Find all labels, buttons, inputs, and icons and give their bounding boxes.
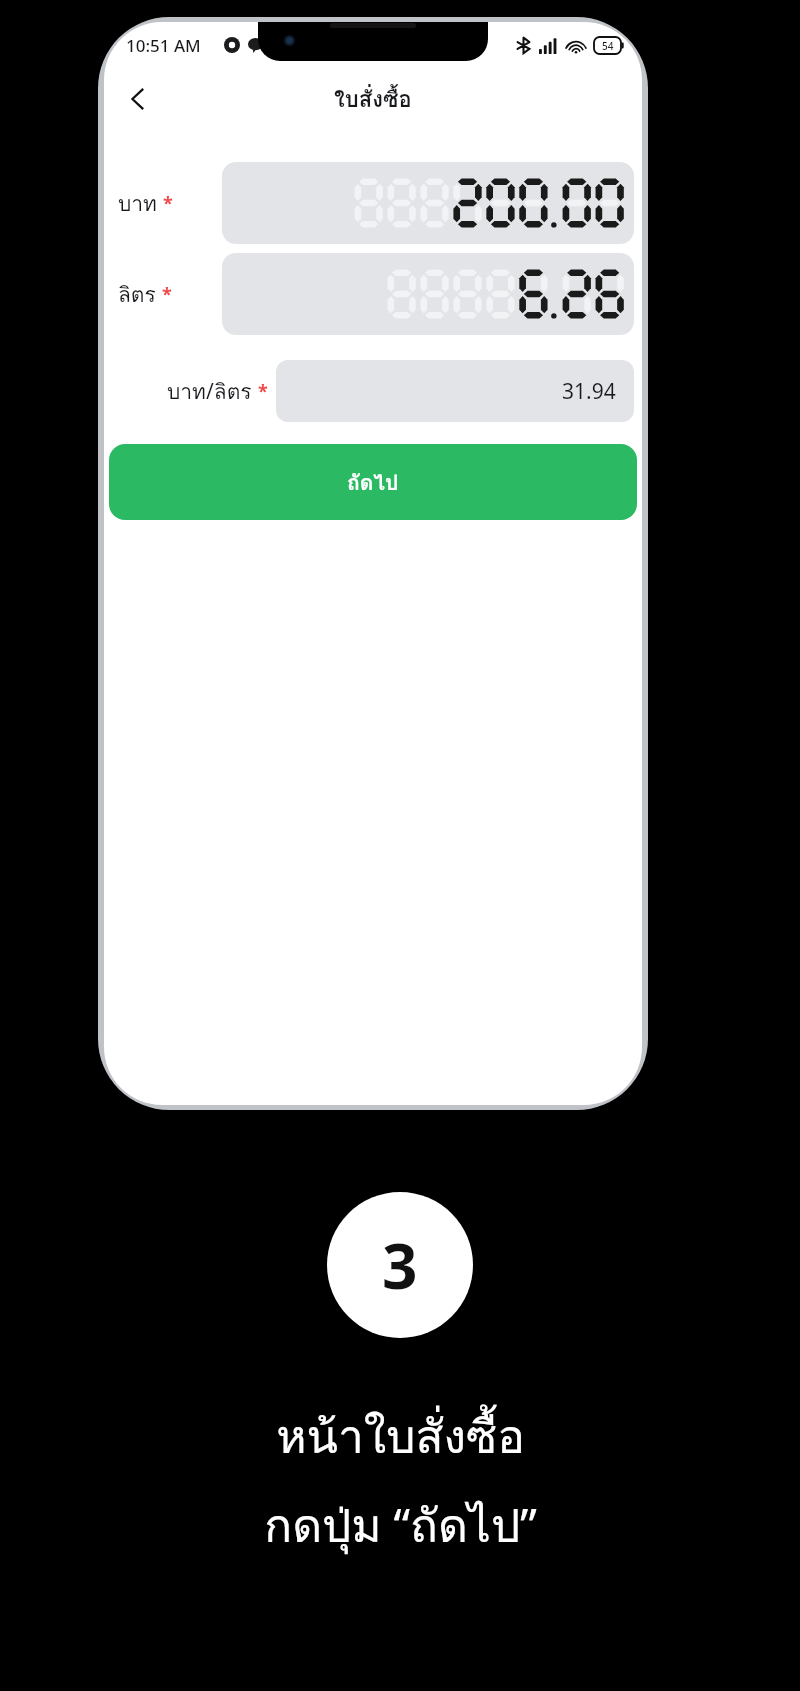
button[interactable]: 31.94 (276, 360, 634, 422)
button[interactable] (222, 253, 634, 335)
button[interactable]: ถัดไป (109, 444, 637, 520)
staticText: หน้าใบสั่งซื้อ (276, 1400, 525, 1473)
staticText: 10:51 AM (126, 34, 201, 57)
button[interactable] (222, 162, 634, 244)
staticText: * (163, 191, 173, 216)
staticText: บาท (118, 187, 157, 220)
staticText: ลิตร (118, 278, 156, 311)
staticText: บาท/ลิตร (167, 375, 252, 408)
staticText: 3 (382, 1223, 418, 1307)
staticText: ถัดไป (347, 466, 399, 499)
staticText: กดปุ่ม “ถัดไป” (264, 1489, 537, 1562)
staticText: ใบสั่งซื้อ (334, 82, 412, 117)
button[interactable]: Back (112, 73, 164, 125)
staticText: * (258, 379, 268, 404)
staticText: * (162, 282, 172, 307)
staticText: 54 (602, 39, 614, 53)
staticText: 31.94 (562, 377, 616, 406)
